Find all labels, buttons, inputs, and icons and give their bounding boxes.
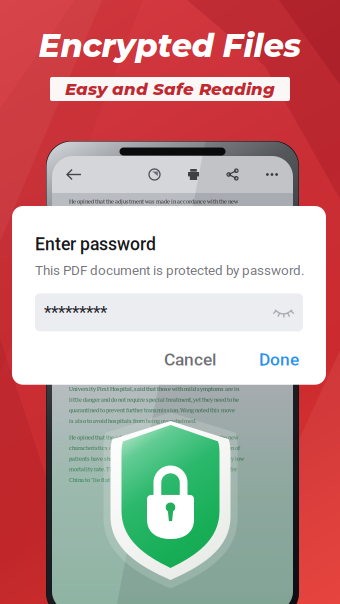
staticText: Encrypted Files	[38, 26, 301, 65]
staticText: Easy and Safe Reading	[65, 79, 275, 99]
staticText: University First Hospital, said that tho…	[69, 385, 239, 393]
staticText: This PDF document is protected by passwo…	[35, 263, 305, 278]
staticText: is also to avoid hospitals from being ov…	[69, 299, 197, 307]
staticText: China to "lie flat" as cases surge, Wang…	[69, 358, 186, 366]
staticText: China to "lie flat" as cases surge, Wang…	[69, 476, 186, 484]
button[interactable]: Cancel	[154, 343, 226, 376]
staticText: characteristics of China's epidemic prev…	[69, 444, 240, 452]
staticText: Enter password	[35, 234, 156, 255]
staticText: quarantined to prevent further transmiss…	[69, 288, 235, 296]
button[interactable]: Night mode	[143, 163, 166, 186]
staticText: mortality rate. The changes should not b…	[69, 465, 237, 473]
staticText: mortality rate. The changes should not b…	[69, 229, 237, 237]
staticText: mortality rate. The changes should not b…	[69, 347, 237, 355]
staticText: *********	[44, 303, 107, 322]
staticText: University First Hospital, said that tho…	[69, 267, 239, 275]
button[interactable]: More	[260, 167, 284, 182]
staticText: Cancel	[164, 349, 216, 370]
button[interactable]: Print	[182, 163, 205, 186]
button[interactable]: Back	[61, 163, 87, 185]
staticText: He opined that the adjustment was made i…	[69, 197, 238, 205]
button[interactable]: Done	[255, 343, 303, 376]
staticText: China to "lie flat" as cases surge, Wang…	[69, 240, 186, 248]
staticText: little danger and do not require special…	[69, 396, 239, 403]
button[interactable]: Share	[221, 163, 244, 186]
button[interactable]: *********	[35, 293, 303, 331]
staticText: patients have shown only mild symptoms, …	[69, 455, 244, 462]
staticText: He opined that the adjustment was made i…	[69, 433, 238, 441]
staticText: characteristics of China's epidemic prev…	[69, 326, 240, 334]
staticText: quarantined to prevent further transmiss…	[69, 406, 235, 414]
staticText: is also to avoid hospitals from being ov…	[69, 417, 197, 425]
staticText: Done	[259, 349, 299, 370]
